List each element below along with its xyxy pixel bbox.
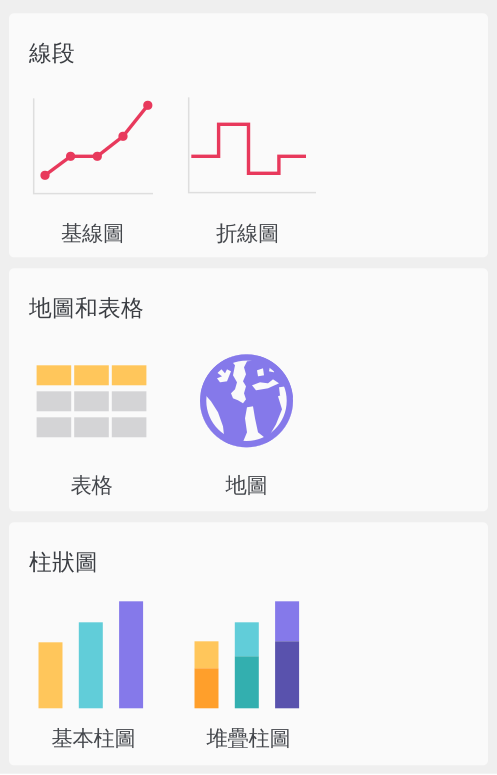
- staticText: 堆疊柱圖: [206, 725, 290, 751]
- staticText: 基線圖: [61, 220, 124, 246]
- staticText: 折線圖: [216, 220, 279, 246]
- button[interactable]: 折線圖: [175, 83, 330, 249]
- staticText: 線段: [29, 39, 75, 67]
- button[interactable]: 表格: [20, 338, 175, 498]
- staticText: 地圖和表格: [29, 294, 144, 322]
- button[interactable]: 堆疊柱圖: [175, 582, 330, 754]
- staticText: 基本柱圖: [51, 725, 135, 751]
- staticText: 表格: [70, 472, 112, 498]
- button[interactable]: 基線圖: [20, 83, 175, 249]
- staticText: 地圖: [225, 472, 267, 498]
- staticText: 柱狀圖: [29, 548, 98, 576]
- button[interactable]: 基本柱圖: [20, 582, 175, 754]
- button[interactable]: 地圖: [175, 338, 330, 498]
